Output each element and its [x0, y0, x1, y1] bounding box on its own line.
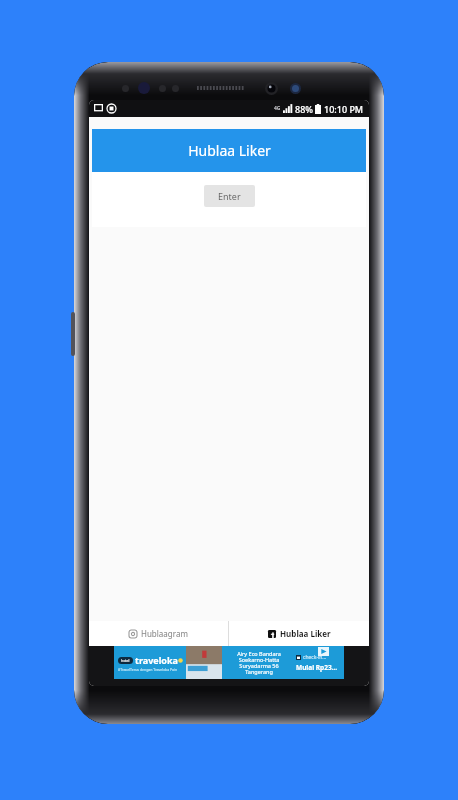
button[interactable]: Hublaa Liker: [229, 621, 369, 646]
staticText: traveloka: [135, 654, 178, 666]
staticText: Mulai Rp23...: [296, 663, 338, 672]
staticText: Airy Eco Bandara Soekarno-Hatta Suryadar…: [237, 650, 281, 676]
staticText: 4G: [274, 105, 281, 112]
button[interactable]: Enter: [204, 185, 255, 207]
staticText: #TravelTerus dengan Traveloka Pain: [118, 667, 178, 672]
staticText: Enter: [218, 190, 241, 202]
staticText: Hublaagram: [141, 628, 188, 639]
staticText: 88%: [295, 103, 313, 115]
staticText: Hublaa Liker: [188, 141, 271, 160]
staticText: Hublaa Liker: [280, 628, 331, 639]
button[interactable]: Advertisement: Traveloka hotel booking: [114, 646, 344, 679]
staticText: 10:10 PM: [324, 103, 364, 115]
staticText: check-in...: [303, 654, 327, 661]
button[interactable]: Hublaagram: [89, 621, 228, 646]
staticText: hotel: [121, 658, 130, 663]
